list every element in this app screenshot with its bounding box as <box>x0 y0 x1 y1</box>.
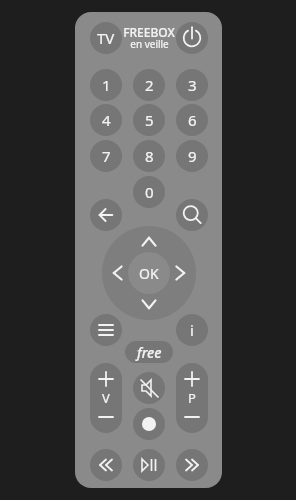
button[interactable]: Record <box>133 408 165 440</box>
staticText: 3 <box>188 75 197 95</box>
button[interactable]: 9 <box>176 140 208 172</box>
button[interactable]: Rewind <box>90 449 122 481</box>
button[interactable]: OK <box>128 252 170 294</box>
button[interactable]: 0 <box>133 176 165 208</box>
staticText: 5 <box>145 110 154 130</box>
staticText: 8 <box>145 146 154 166</box>
staticText: 1 <box>102 75 111 95</box>
staticText: en veille <box>130 37 169 51</box>
staticText: 9 <box>188 146 197 166</box>
button[interactable]: 8 <box>133 140 165 172</box>
button[interactable]: TV <box>90 22 122 54</box>
button[interactable]: 2 <box>133 69 165 101</box>
staticText: 4 <box>102 110 111 130</box>
button[interactable]: 4 <box>90 104 122 136</box>
button[interactable]: Play or pause <box>133 449 165 481</box>
button[interactable]: 6 <box>176 104 208 136</box>
button[interactable]: Mute <box>133 372 165 404</box>
staticText: 2 <box>145 75 154 95</box>
button[interactable]: Fast forward <box>176 449 208 481</box>
staticText: FREEBOX <box>123 24 175 40</box>
staticText: 0 <box>145 182 154 202</box>
button[interactable]: Right <box>172 257 196 289</box>
button[interactable]: Up <box>133 226 165 250</box>
staticText: P <box>188 389 196 407</box>
button[interactable]: Left <box>102 257 126 289</box>
staticText: 7 <box>102 146 111 166</box>
staticText: V <box>102 389 110 407</box>
button[interactable]: free <box>125 341 173 363</box>
staticText: TV <box>97 28 115 48</box>
button[interactable]: Search <box>176 199 208 231</box>
staticText: i <box>190 320 194 340</box>
staticText: 6 <box>188 110 197 130</box>
button[interactable]: Menu <box>90 314 122 346</box>
button[interactable]: Volume <box>90 363 122 433</box>
button[interactable]: 5 <box>133 104 165 136</box>
button[interactable]: i <box>176 314 208 346</box>
button[interactable]: Back <box>90 199 122 231</box>
button[interactable]: Down <box>133 296 165 320</box>
button[interactable]: 1 <box>90 69 122 101</box>
button[interactable]: 7 <box>90 140 122 172</box>
button[interactable]: 3 <box>176 69 208 101</box>
staticText: OK <box>139 264 159 283</box>
button[interactable]: Program <box>176 363 208 433</box>
button[interactable]: Power <box>176 22 208 54</box>
staticText: free <box>137 343 162 362</box>
